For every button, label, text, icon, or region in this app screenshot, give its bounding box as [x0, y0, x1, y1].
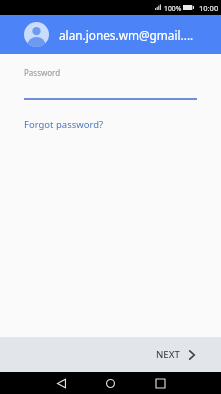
staticText: Forgot password? — [24, 118, 104, 131]
button[interactable]: NEXT — [156, 348, 221, 361]
staticText: Password — [24, 67, 61, 78]
button[interactable]: Forgot password? — [24, 118, 104, 131]
staticText: 10:00 — [199, 3, 219, 13]
staticText: alan.jones.wm@gmail.... — [59, 27, 194, 43]
button[interactable]: Back — [48, 372, 74, 394]
button[interactable]: Home — [97, 372, 123, 394]
staticText: NEXT — [156, 348, 180, 361]
button[interactable]: Recents — [147, 372, 173, 394]
button[interactable]: alan.jones.wm@gmail.... — [0, 15, 221, 54]
staticText: 100% — [164, 4, 182, 13]
button[interactable]: Password — [24, 63, 197, 100]
